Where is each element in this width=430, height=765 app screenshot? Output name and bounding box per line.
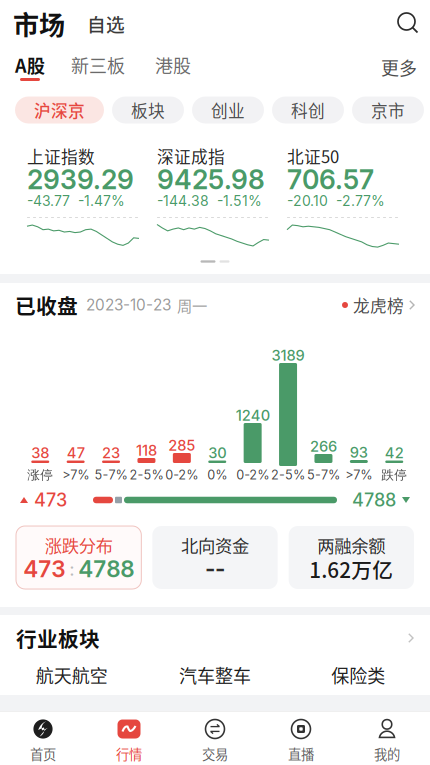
staticText: 涨停 bbox=[27, 467, 53, 483]
staticText: 47 bbox=[67, 444, 85, 462]
staticText: 龙虎榜 bbox=[353, 293, 404, 317]
staticText: -2.77% bbox=[336, 192, 385, 209]
button[interactable]: 保险类 bbox=[287, 661, 430, 689]
staticText: 汽车整车 bbox=[179, 662, 251, 688]
staticText: 直播 bbox=[288, 744, 314, 763]
button[interactable]: 行情 bbox=[86, 712, 172, 765]
button[interactable]: 自选 bbox=[87, 10, 125, 37]
button[interactable]: 首页 bbox=[0, 712, 86, 765]
staticText: 118 bbox=[136, 442, 157, 459]
staticText: 473 bbox=[23, 555, 65, 583]
staticText: 706.57 bbox=[287, 163, 374, 196]
staticText: 266 bbox=[310, 438, 337, 455]
staticText: 0-2% bbox=[165, 467, 198, 483]
staticText: 5-7% bbox=[307, 467, 340, 483]
staticText: 3189 bbox=[272, 347, 305, 364]
button[interactable]: 北向资金 bbox=[152, 526, 278, 589]
staticText: 4788 bbox=[352, 489, 396, 511]
staticText: 北向资金 bbox=[181, 532, 249, 558]
staticText: 2-5% bbox=[129, 467, 163, 483]
button[interactable]: 龙虎榜 bbox=[342, 293, 415, 317]
button[interactable]: 科创 bbox=[272, 96, 344, 123]
staticText: 航天航空 bbox=[36, 662, 108, 688]
staticText: 创业 bbox=[211, 98, 245, 122]
staticText: 科创 bbox=[291, 98, 325, 122]
staticText: -1.47% bbox=[78, 192, 125, 209]
button[interactable]: 新三板 bbox=[71, 47, 125, 88]
staticText: 2939.29 bbox=[27, 163, 134, 196]
button[interactable]: 创业 bbox=[192, 96, 264, 123]
staticText: 9425.98 bbox=[157, 163, 265, 196]
staticText: 跌停 bbox=[381, 467, 407, 483]
staticText: 保险类 bbox=[331, 662, 385, 688]
staticText: 行业板块 bbox=[16, 623, 100, 653]
button[interactable]: 京市 bbox=[352, 96, 424, 123]
staticText: 自选 bbox=[87, 10, 125, 37]
staticText: 新三板 bbox=[71, 52, 125, 78]
staticText: 42 bbox=[385, 444, 404, 462]
button[interactable]: 上证指数 bbox=[27, 146, 143, 250]
staticText: 0% bbox=[207, 467, 227, 483]
staticText: 首页 bbox=[30, 744, 56, 763]
button[interactable]: A股 bbox=[15, 47, 45, 88]
staticText: 473 bbox=[34, 489, 67, 511]
staticText: 5-7% bbox=[95, 467, 128, 483]
button[interactable]: 涨跌分布 bbox=[16, 526, 141, 589]
button[interactable]: 交易 bbox=[172, 712, 258, 765]
staticText: 两融余额 bbox=[317, 532, 385, 558]
staticText: 38 bbox=[31, 444, 49, 462]
staticText: >7% bbox=[345, 467, 372, 483]
staticText: 京市 bbox=[371, 98, 405, 122]
staticText: 23 bbox=[102, 444, 120, 462]
staticText: 0-2% bbox=[236, 467, 269, 483]
button[interactable]: 沪深京 bbox=[15, 96, 104, 123]
staticText: 涨跌分布 bbox=[45, 532, 113, 558]
staticText: 北证50 bbox=[287, 144, 339, 168]
staticText: 4788 bbox=[78, 555, 134, 583]
button[interactable]: 直播 bbox=[258, 712, 344, 765]
staticText: 港股 bbox=[155, 52, 191, 78]
staticText: 沪深京 bbox=[34, 98, 85, 122]
staticText: -1.51% bbox=[217, 192, 262, 209]
staticText: -43.77 bbox=[27, 192, 70, 209]
staticText: 30 bbox=[208, 444, 226, 462]
staticText: 深证成指 bbox=[157, 144, 225, 168]
staticText: 行情 bbox=[116, 744, 142, 763]
staticText: 市场 bbox=[13, 5, 65, 42]
button[interactable]: 两融余额 bbox=[289, 526, 414, 589]
staticText: -144.38 bbox=[157, 192, 209, 209]
staticText: -20.10 bbox=[287, 192, 328, 209]
staticText: 我的 bbox=[374, 744, 400, 763]
button[interactable]: 北证50 bbox=[287, 146, 403, 250]
staticText: 交易 bbox=[202, 744, 228, 763]
button[interactable]: 我的 bbox=[344, 712, 430, 765]
staticText: 2-5% bbox=[271, 467, 305, 483]
staticText: 板块 bbox=[131, 98, 165, 122]
staticText: : bbox=[69, 558, 74, 580]
staticText: 上证指数 bbox=[27, 144, 95, 168]
staticText: 2023-10-23 bbox=[86, 296, 171, 314]
staticText: 93 bbox=[350, 444, 368, 461]
staticText: 1240 bbox=[236, 407, 270, 424]
staticText: 更多 bbox=[381, 54, 417, 81]
button[interactable]: 搜索 bbox=[398, 13, 419, 34]
staticText: >7% bbox=[62, 467, 89, 483]
button[interactable]: 航天航空 bbox=[0, 661, 143, 689]
staticText: 285 bbox=[168, 437, 195, 454]
button[interactable]: 更多 bbox=[381, 47, 417, 87]
staticText: 已收盘 bbox=[15, 290, 78, 320]
button[interactable]: 板块 bbox=[112, 96, 184, 123]
staticText: 周一 bbox=[177, 294, 207, 316]
button[interactable]: 行业板块 bbox=[0, 615, 430, 661]
staticText: A股 bbox=[15, 52, 45, 78]
button[interactable]: 港股 bbox=[155, 47, 191, 88]
staticText: 1.62万亿 bbox=[309, 554, 393, 584]
button[interactable]: 汽车整车 bbox=[143, 661, 287, 689]
button[interactable]: 深证成指 bbox=[157, 146, 273, 250]
staticText: -- bbox=[205, 555, 225, 583]
